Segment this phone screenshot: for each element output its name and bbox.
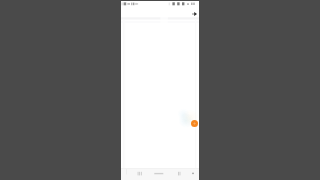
button[interactable]: Recents [173,169,199,180]
button[interactable]: Home [147,169,173,180]
button[interactable]: Back [121,169,147,180]
button[interactable]: Forward [190,9,199,18]
button[interactable]: Add [191,120,198,127]
